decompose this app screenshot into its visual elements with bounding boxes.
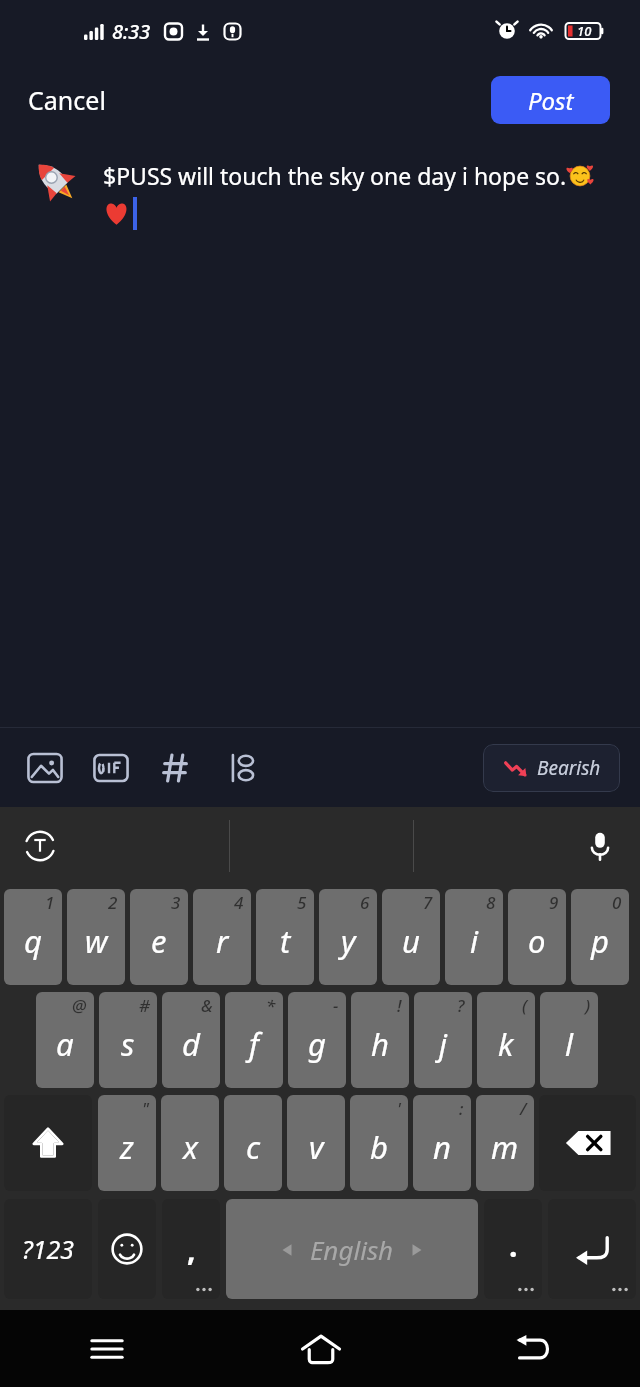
staticText: # <box>139 994 150 1017</box>
button[interactable]: 0 <box>571 889 629 985</box>
staticText: 10 <box>577 22 592 40</box>
staticText: Post <box>528 84 574 117</box>
staticText: , <box>187 1229 196 1270</box>
staticText: t <box>280 920 291 962</box>
staticText: . <box>509 1225 518 1266</box>
staticText: ' <box>397 1097 401 1120</box>
staticText: y <box>341 920 356 962</box>
staticText: j <box>439 1023 447 1065</box>
button[interactable]: - <box>288 992 346 1088</box>
staticText: ( <box>522 994 528 1017</box>
button[interactable]: ' <box>350 1095 408 1191</box>
staticText: f <box>249 1023 259 1065</box>
staticText: 1 <box>45 891 55 914</box>
button[interactable]: 4 <box>193 889 251 985</box>
button[interactable]: 2 <box>67 889 125 985</box>
staticText: a <box>56 1023 74 1065</box>
button[interactable]: ! <box>351 992 409 1088</box>
staticText: i <box>470 920 478 962</box>
staticText: 5 <box>297 891 307 914</box>
button[interactable]: Voice input <box>574 820 626 872</box>
staticText: q <box>24 920 42 962</box>
button[interactable]: v <box>287 1095 345 1191</box>
staticText: ? <box>457 994 465 1017</box>
button[interactable]: ?123 <box>4 1199 92 1299</box>
staticText: ! <box>397 994 402 1017</box>
button[interactable]: Shift <box>4 1095 92 1191</box>
staticText: 7 <box>423 891 433 914</box>
button[interactable]: Backspace <box>539 1095 636 1191</box>
staticText: o <box>528 920 546 962</box>
button[interactable]: 3 <box>130 889 188 985</box>
button[interactable]: Create poll <box>220 745 266 791</box>
staticText: k <box>498 1023 514 1065</box>
staticText: r <box>216 920 229 962</box>
staticText: u <box>402 920 420 962</box>
button[interactable]: # <box>99 992 157 1088</box>
button[interactable]: 1 <box>4 889 62 985</box>
button[interactable]: / <box>476 1095 534 1191</box>
staticText: $PUSS will touch the sky one day i hope … <box>103 160 567 191</box>
button[interactable]: Home <box>214 1310 427 1387</box>
staticText: s <box>121 1023 135 1065</box>
button[interactable]: * <box>225 992 283 1088</box>
staticText: ) <box>585 994 591 1017</box>
button[interactable]: Space, English <box>226 1199 478 1299</box>
button[interactable]: , <box>162 1199 220 1299</box>
button[interactable]: & <box>162 992 220 1088</box>
staticText: d <box>182 1023 200 1065</box>
button[interactable]: Add image <box>22 745 68 791</box>
staticText: v <box>309 1126 324 1168</box>
staticText: p <box>591 920 609 962</box>
staticText: English <box>310 1232 394 1267</box>
button[interactable]: Add hashtag <box>154 745 200 791</box>
staticText: 0 <box>612 891 622 914</box>
staticText: 8:33 <box>112 18 151 45</box>
button[interactable]: c <box>224 1095 282 1191</box>
staticText: c <box>246 1126 261 1168</box>
staticText: Bearish <box>537 755 601 781</box>
button[interactable]: @ <box>36 992 94 1088</box>
staticText: h <box>371 1023 389 1065</box>
button[interactable]: Recents <box>0 1310 214 1387</box>
button[interactable]: Add GIF <box>88 745 134 791</box>
staticText: x <box>183 1126 198 1168</box>
staticText: 2 <box>108 891 118 914</box>
button[interactable]: Cancel <box>14 75 120 125</box>
button[interactable]: x <box>161 1095 219 1191</box>
staticText: * <box>266 994 276 1017</box>
staticText: g <box>308 1023 326 1065</box>
button[interactable]: Post <box>491 76 610 124</box>
button[interactable]: 8 <box>445 889 503 985</box>
staticText: Cancel <box>28 83 106 117</box>
staticText: ?123 <box>22 1232 75 1266</box>
staticText: " <box>142 1097 149 1120</box>
staticText: @ <box>72 994 87 1017</box>
button[interactable]: 5 <box>256 889 314 985</box>
button[interactable]: " <box>98 1095 156 1191</box>
staticText: 3 <box>171 891 181 914</box>
button[interactable]: 7 <box>382 889 440 985</box>
staticText: 4 <box>234 891 244 914</box>
button[interactable]: : <box>413 1095 471 1191</box>
button[interactable]: ? <box>414 992 472 1088</box>
staticText: 9 <box>549 891 559 914</box>
button[interactable]: Enter <box>548 1199 636 1299</box>
button[interactable]: ) <box>540 992 598 1088</box>
button[interactable]: 6 <box>319 889 377 985</box>
staticText: - <box>333 994 339 1017</box>
staticText: : <box>459 1097 464 1120</box>
button[interactable]: 9 <box>508 889 566 985</box>
staticText: / <box>520 1097 527 1120</box>
staticText: b <box>370 1126 388 1168</box>
button[interactable]: ( <box>477 992 535 1088</box>
staticText: l <box>565 1023 573 1065</box>
button[interactable]: Back <box>427 1310 640 1387</box>
button[interactable]: Bearish <box>483 744 620 792</box>
staticText: 8 <box>486 891 496 914</box>
staticText: w <box>85 920 108 962</box>
button[interactable]: Translate <box>14 820 66 872</box>
button[interactable]: . <box>484 1199 542 1299</box>
staticText: 6 <box>360 891 370 914</box>
button[interactable]: Emoji <box>98 1199 156 1299</box>
